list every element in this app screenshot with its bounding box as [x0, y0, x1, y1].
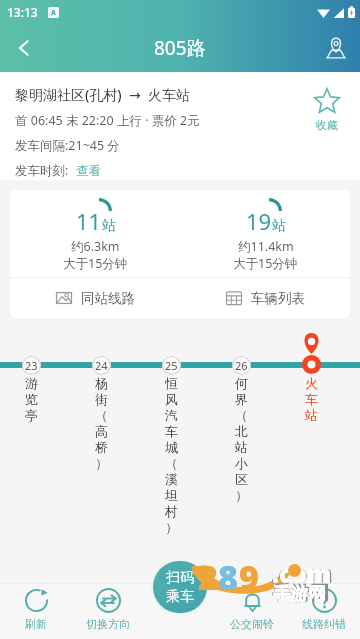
- button[interactable]: 25: [146, 356, 197, 536]
- button[interactable]: 刷新: [0, 583, 72, 639]
- button[interactable]: 查看: [76, 163, 101, 179]
- staticText: 火车站: [304, 375, 319, 424]
- staticText: 刷新: [25, 617, 47, 631]
- staticText: 9: [239, 554, 259, 600]
- button[interactable]: 26: [216, 356, 267, 504]
- staticText: 约11.4km: [238, 238, 294, 255]
- staticText: 游览亭: [24, 375, 39, 424]
- button[interactable]: 线路纠错: [288, 583, 360, 639]
- staticText: 25: [165, 358, 178, 373]
- staticText: 站: [102, 217, 116, 235]
- staticText: 何界（北站小区）: [234, 375, 249, 504]
- staticText: 首 06:45 末 22:20 上行 · 票价 2元: [15, 112, 200, 129]
- staticText: 恒风汽车城（溪坦村）: [164, 375, 179, 536]
- staticText: 26: [235, 358, 248, 373]
- button[interactable]: 扫码 乘车: [153, 561, 207, 613]
- staticText: 站: [272, 217, 286, 235]
- button[interactable]: 同站线路: [10, 278, 180, 318]
- staticText: 约6.3km: [71, 238, 120, 255]
- staticText: 8: [218, 554, 238, 600]
- staticText: 19: [246, 206, 272, 236]
- staticText: 线路纠错: [302, 617, 346, 631]
- staticText: 车辆列表: [251, 290, 305, 307]
- staticText: 大于15分钟: [63, 255, 128, 272]
- staticText: 手游网: [273, 583, 326, 605]
- button[interactable]: 切换方向: [72, 583, 144, 639]
- button[interactable]: 23: [6, 356, 57, 424]
- staticText: 13:13: [7, 4, 38, 20]
- staticText: .com: [272, 557, 332, 590]
- staticText: 2: [198, 554, 218, 600]
- staticText: A: [51, 8, 56, 18]
- staticText: 黎明湖社区(孔村) → 火车站: [15, 85, 191, 104]
- button[interactable]: Map: [312, 24, 360, 72]
- staticText: 公交闹铃: [230, 617, 274, 631]
- staticText: 扫码 乘车: [166, 569, 194, 605]
- staticText: 大于15分钟: [233, 255, 298, 272]
- staticText: 发车间隔:21~45 分: [15, 137, 120, 154]
- staticText: 收藏: [316, 118, 338, 132]
- staticText: 查看: [76, 163, 101, 179]
- staticText: 发车时刻:: [15, 162, 69, 179]
- staticText: 23: [25, 358, 38, 373]
- button[interactable]: 24: [76, 356, 127, 472]
- staticText: 11: [76, 206, 102, 236]
- staticText: .com: [271, 556, 333, 590]
- button[interactable]: 收藏: [314, 88, 340, 132]
- staticText: 805路: [154, 35, 206, 61]
- staticText: 同站线路: [81, 290, 135, 307]
- staticText: 杨街（高桥）: [94, 375, 109, 472]
- button[interactable]: 火车站: [289, 333, 334, 424]
- staticText: 切换方向: [86, 617, 130, 631]
- button[interactable]: 车辆列表: [180, 278, 350, 318]
- staticText: 24: [95, 358, 108, 373]
- button[interactable]: Back: [0, 24, 48, 72]
- button[interactable]: 公交闹铃: [216, 583, 288, 639]
- staticText: 手游网: [272, 582, 329, 606]
